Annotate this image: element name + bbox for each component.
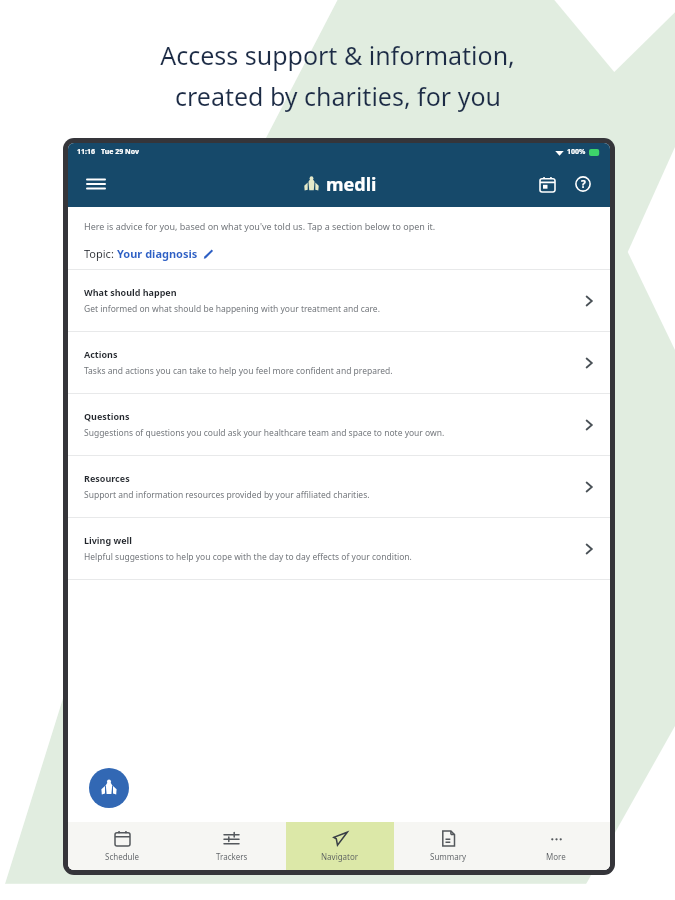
button[interactable]: What should happen <box>68 270 610 331</box>
staticText: Questions <box>84 410 130 422</box>
staticText: Your diagnosis <box>117 246 198 261</box>
staticText: Get informed on what should be happening… <box>84 303 380 315</box>
staticText: medli <box>326 172 377 197</box>
staticText: Helpful suggestions to help you cope wit… <box>84 551 412 563</box>
staticText: More <box>546 851 566 862</box>
button[interactable]: Questions <box>68 394 610 455</box>
button[interactable]: Calendar <box>532 169 562 199</box>
staticText: Suggestions of questions you could ask y… <box>84 427 445 439</box>
button[interactable]: Medli assistant <box>89 768 129 808</box>
button[interactable]: Summary <box>394 822 502 870</box>
staticText: Support and information resources provid… <box>84 489 370 501</box>
button[interactable]: More <box>502 822 610 870</box>
staticText: Topic: <box>84 246 117 261</box>
staticText: What should happen <box>84 286 177 298</box>
staticText: Tasks and actions you can take to help y… <box>84 365 393 377</box>
button[interactable]: Trackers <box>177 822 286 870</box>
button[interactable]: Help <box>568 169 598 199</box>
staticText: 100% <box>567 147 586 157</box>
staticText: Summary <box>430 851 467 862</box>
button[interactable]: Menu <box>80 168 112 200</box>
button[interactable]: Living well <box>68 518 610 579</box>
button[interactable]: Schedule <box>68 822 177 870</box>
button[interactable]: Resources <box>68 456 610 517</box>
staticText: created by charities, for you <box>175 79 501 113</box>
button[interactable]: Navigator <box>286 822 394 870</box>
staticText: Resources <box>84 472 130 484</box>
staticText: Trackers <box>216 851 248 862</box>
button[interactable]: Actions <box>68 332 610 393</box>
staticText: Navigator <box>321 851 359 862</box>
staticText: Tue 29 Nov <box>101 147 139 157</box>
staticText: ? <box>581 177 586 191</box>
staticText: 11:16 <box>77 147 95 157</box>
staticText: Access support & information, <box>160 38 515 72</box>
staticText: Schedule <box>105 851 140 862</box>
staticText: Living well <box>84 534 132 546</box>
button[interactable]: Topic: <box>84 246 213 261</box>
staticText: Actions <box>84 348 118 360</box>
staticText: Here is advice for you, based on what yo… <box>84 220 436 232</box>
